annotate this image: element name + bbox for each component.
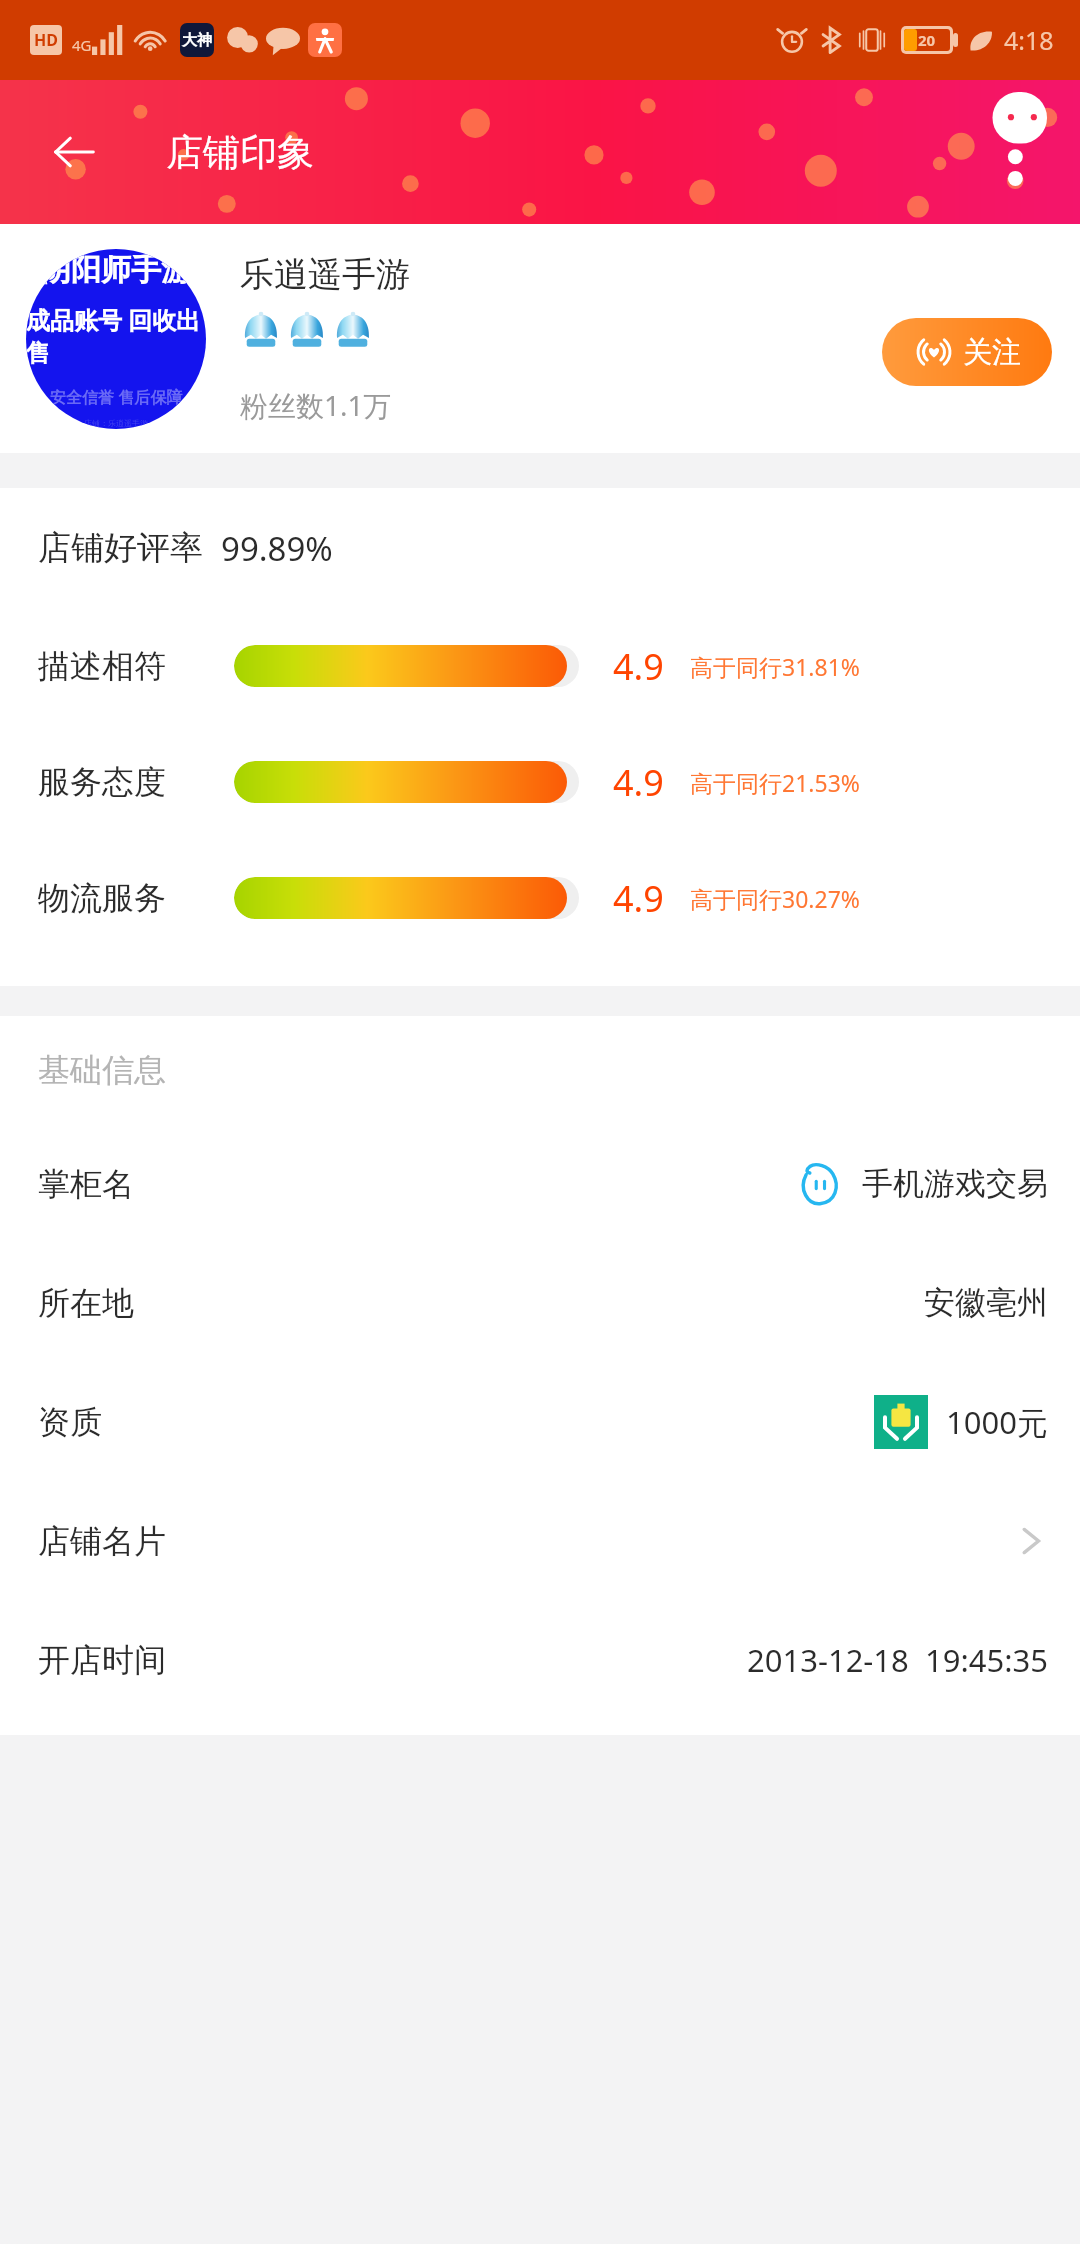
staticText: 店铺印象	[166, 129, 314, 176]
staticText: 4.9	[613, 874, 664, 923]
staticText: 4:18	[1004, 23, 1054, 57]
button[interactable]: 关注	[882, 318, 1052, 386]
staticText: 店铺好评率	[38, 527, 203, 569]
staticText: 乐逍遥手游	[240, 253, 410, 296]
staticText: 服务态度	[38, 762, 234, 802]
staticText: 成品账号 回收出售	[26, 303, 206, 368]
staticText: 基础信息	[38, 1050, 166, 1090]
staticText: 资质	[38, 1402, 102, 1442]
staticText: 4.9	[613, 642, 664, 691]
staticText: 粉丝数1.1万	[240, 386, 392, 424]
staticText: 2013-12-18 19:45:35	[747, 1639, 1048, 1681]
staticText: 安全信誉 售后保障	[50, 386, 183, 408]
staticText: 1000元	[946, 1401, 1048, 1443]
staticText: 4G	[72, 35, 92, 55]
staticText: 大神	[182, 31, 212, 50]
staticText: 开店时间	[38, 1640, 166, 1680]
staticText: 物流服务	[38, 878, 234, 918]
staticText: 店铺：乐逍遥手游	[84, 418, 148, 428]
staticText: 描述相符	[38, 646, 234, 686]
staticText: 安徽亳州	[924, 1283, 1048, 1322]
button[interactable]: 开店时间	[0, 1600, 1080, 1719]
button[interactable]: Shop avatar	[26, 249, 206, 429]
staticText: 20	[918, 30, 936, 50]
staticText: 阴阳师手游	[41, 251, 191, 289]
button[interactable]: 店铺名片	[0, 1481, 1080, 1600]
button[interactable]: Back	[38, 116, 110, 188]
staticText: 所在地	[38, 1283, 134, 1323]
staticText: HD	[34, 29, 58, 51]
button[interactable]: 所在地	[0, 1243, 1080, 1362]
staticText: 高于同行30.27%	[690, 883, 860, 914]
button[interactable]: More options	[974, 80, 1062, 200]
staticText: 4.9	[613, 758, 664, 807]
staticText: 店铺名片	[38, 1521, 166, 1561]
staticText: 手机游戏交易	[862, 1164, 1048, 1203]
staticText: 掌柜名	[38, 1164, 134, 1204]
button[interactable]: 掌柜名	[0, 1124, 1080, 1243]
staticText: 99.89%	[221, 526, 333, 571]
staticText: 高于同行21.53%	[690, 767, 860, 798]
button[interactable]: 资质	[0, 1362, 1080, 1481]
staticText: 高于同行31.81%	[690, 651, 860, 682]
staticText: 关注	[963, 334, 1021, 371]
